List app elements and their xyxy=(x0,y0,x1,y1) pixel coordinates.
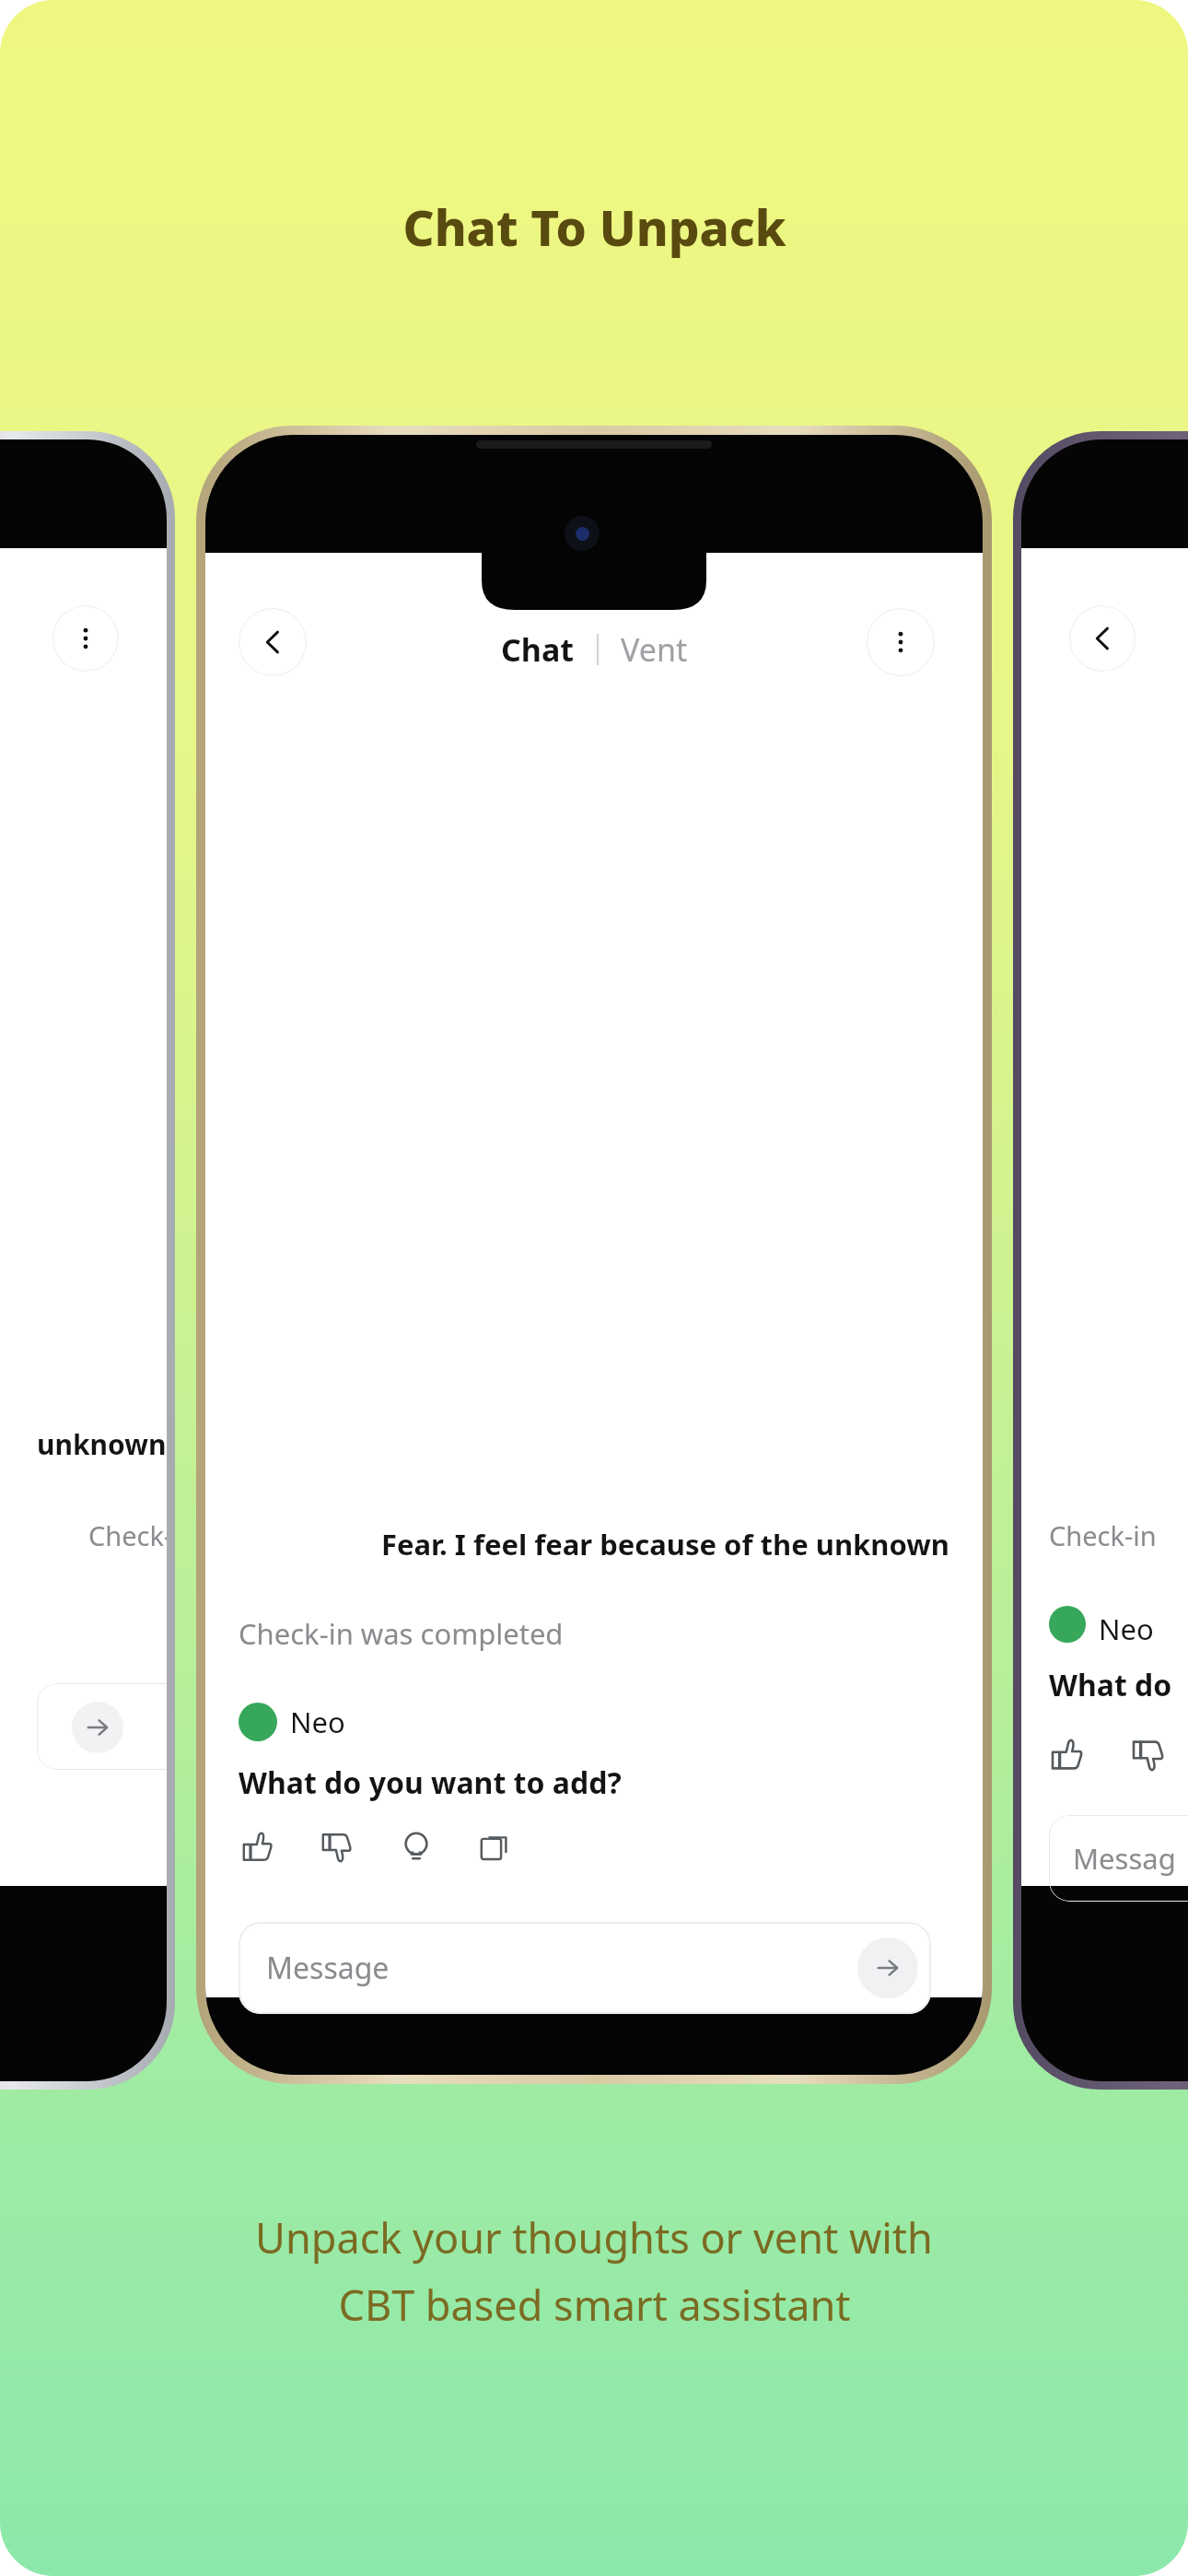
staticText: Neo xyxy=(290,1703,345,1741)
staticText: Unpack your thoughts or vent with xyxy=(255,2209,933,2266)
button[interactable]: Dislike xyxy=(316,1826,358,1868)
staticText: Messag xyxy=(1073,1839,1176,1878)
staticText: Neo xyxy=(1099,1610,1154,1648)
staticText: Fear. I feel fear because of the unknown xyxy=(381,1525,949,1563)
button[interactable]: Message xyxy=(239,1922,931,2014)
button[interactable]: Send xyxy=(857,1938,918,1998)
staticText: Chat To Unpack xyxy=(402,193,786,260)
button[interactable]: Copy xyxy=(474,1826,517,1868)
button[interactable]: Insight xyxy=(395,1826,437,1868)
button[interactable]: More options xyxy=(52,605,119,672)
button[interactable]: Back xyxy=(1069,605,1136,672)
button[interactable]: More options xyxy=(867,608,935,676)
button[interactable]: Like xyxy=(237,1826,279,1868)
staticText: Check-in xyxy=(1049,1517,1157,1553)
staticText: What do xyxy=(1049,1665,1172,1705)
button[interactable]: Back xyxy=(239,608,307,676)
button[interactable]: Chat xyxy=(495,625,580,674)
staticText: What do you want to add? xyxy=(239,1762,622,1803)
staticText: Message xyxy=(266,1948,390,1988)
staticText: Chat xyxy=(501,628,575,671)
staticText: Vent xyxy=(621,628,688,671)
staticText: Check-in was completed xyxy=(239,1614,564,1653)
staticText: Check-in xyxy=(88,1517,167,1553)
button[interactable]: Vent xyxy=(615,625,693,674)
staticText: unknown xyxy=(37,1425,167,1463)
staticText: CBT based smart assistant xyxy=(338,2277,851,2333)
